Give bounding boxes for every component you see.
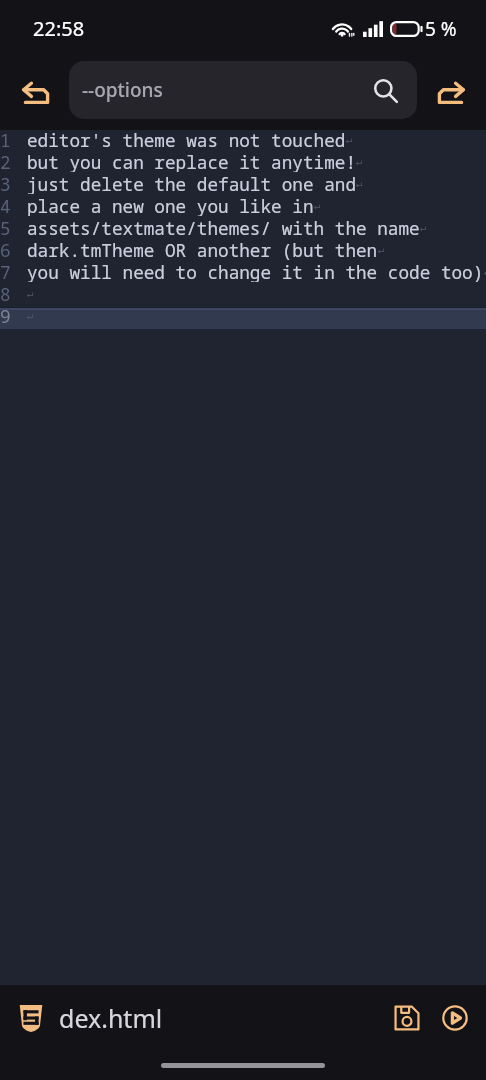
button[interactable]: Run — [431, 994, 479, 1042]
staticText: assets/textmate/themes/ with the name — [27, 216, 420, 238]
staticText: 5 % — [425, 16, 457, 42]
staticText: 6 — [0, 238, 10, 260]
staticText: ↵ — [378, 243, 385, 256]
button[interactable]: --options — [69, 61, 417, 119]
staticText: 8 — [0, 282, 10, 304]
button[interactable]: Save — [383, 994, 431, 1042]
button[interactable]: Undo — [0, 57, 69, 130]
staticText: just delete the default one and — [27, 172, 356, 194]
staticText: ↵ — [27, 309, 34, 322]
staticText: place a new one you like in — [27, 194, 314, 216]
staticText: 22:58 — [33, 15, 85, 42]
staticText: 9 — [0, 304, 10, 326]
staticText: dark.tmTheme OR another (but then — [27, 238, 378, 260]
staticText: but you can replace it anytime! — [27, 150, 356, 172]
staticText: dex.html — [59, 1001, 163, 1035]
staticText: ↵ — [314, 199, 321, 212]
staticText: --options — [82, 77, 163, 103]
staticText: editor's theme was not touched — [27, 128, 346, 150]
staticText: ↵ — [27, 287, 34, 300]
staticText: 4 — [0, 194, 10, 216]
staticText: ↵ — [346, 133, 353, 146]
staticText: ↵ — [356, 177, 363, 190]
staticText: 3 — [0, 172, 10, 194]
staticText: you will need to change it in the code t… — [27, 260, 484, 282]
staticText: 7 — [0, 260, 10, 282]
staticText: 1 — [0, 128, 10, 150]
staticText: 2 — [0, 150, 10, 172]
staticText: ↵ — [420, 221, 427, 234]
staticText: ↵ — [356, 155, 363, 168]
button[interactable]: Redo — [417, 57, 486, 130]
staticText: ↵ — [484, 265, 486, 278]
staticText: 5 — [0, 216, 10, 238]
